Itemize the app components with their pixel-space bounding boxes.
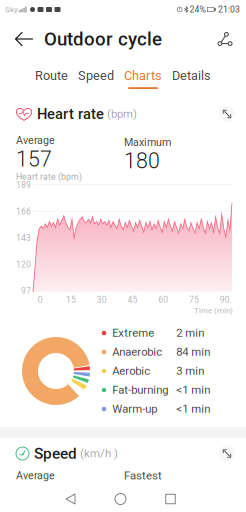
button[interactable]: Share xyxy=(207,19,243,59)
staticText: 3 min xyxy=(176,364,204,378)
button[interactable]: Route xyxy=(30,59,73,94)
button[interactable]: Speed xyxy=(73,59,119,94)
staticText: Speed xyxy=(78,68,114,83)
staticText: 30 xyxy=(97,295,107,305)
staticText: 143 xyxy=(16,233,31,243)
button[interactable]: Details xyxy=(167,59,216,94)
staticText: Route xyxy=(35,68,68,83)
staticText: (bpm) xyxy=(107,107,137,121)
staticText: 84 min xyxy=(176,345,210,359)
staticText: 21:03 xyxy=(218,4,240,15)
staticText: 157 xyxy=(16,147,52,172)
staticText: 97 xyxy=(21,286,31,296)
button[interactable]: Home xyxy=(95,486,146,512)
staticText: 120 xyxy=(16,259,31,270)
button[interactable]: Charts xyxy=(119,59,167,94)
staticText: 75 xyxy=(189,295,199,305)
staticText: Heart rate xyxy=(37,105,104,123)
staticText: <1 min xyxy=(176,383,210,397)
staticText: Average xyxy=(16,469,55,482)
staticText: Charts xyxy=(124,68,162,83)
staticText: Time (min) xyxy=(194,306,233,315)
staticText: 45 xyxy=(127,295,137,305)
staticText: 60 xyxy=(158,295,168,305)
staticText: <1 min xyxy=(176,402,210,416)
staticText: Aerobic xyxy=(112,364,150,378)
staticText: Fastest xyxy=(124,469,162,482)
staticText: 15 xyxy=(66,295,76,305)
staticText: Average xyxy=(16,134,55,147)
staticText: (km/h ) xyxy=(80,447,118,460)
staticText: Speed xyxy=(34,444,77,462)
staticText: 180 xyxy=(124,148,160,173)
staticText: 189 xyxy=(16,180,31,190)
staticText: 0 xyxy=(38,295,43,305)
button[interactable]: Back xyxy=(7,19,41,59)
button[interactable]: Back xyxy=(46,486,95,512)
staticText: Outdoor cycle xyxy=(44,28,162,50)
staticText: 2 min xyxy=(176,326,204,340)
button[interactable]: Expand speed chart xyxy=(216,442,238,464)
staticText: Maximum xyxy=(124,136,171,148)
staticText: Heart rate (bpm) xyxy=(16,172,82,182)
staticText: Warm-up xyxy=(112,402,157,416)
button[interactable]: Recents xyxy=(146,486,195,512)
staticText: Details xyxy=(172,68,211,83)
button[interactable]: Expand heart rate chart xyxy=(216,103,238,125)
staticText: Anaerobic xyxy=(112,345,162,359)
staticText: 24% xyxy=(189,4,205,15)
staticText: Fat-burning xyxy=(112,383,168,397)
staticText: 166 xyxy=(16,206,31,217)
staticText: Sky xyxy=(5,5,18,14)
staticText: Extreme xyxy=(112,326,154,340)
staticText: 90 xyxy=(220,295,230,305)
